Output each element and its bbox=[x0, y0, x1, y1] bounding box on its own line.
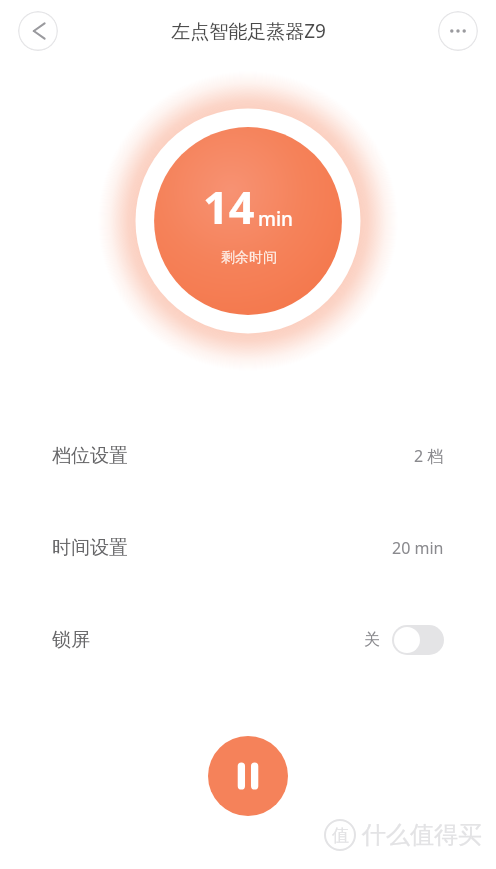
staticText: 14 bbox=[203, 176, 255, 237]
button[interactable]: 锁屏 bbox=[28, 607, 468, 673]
staticText: 时间设置 bbox=[52, 536, 128, 560]
button[interactable]: Pause bbox=[208, 736, 288, 816]
staticText: 剩余时间 bbox=[221, 249, 277, 267]
staticText: 值 bbox=[332, 825, 349, 846]
staticText: min bbox=[258, 206, 294, 232]
staticText: 20 min bbox=[392, 537, 444, 559]
staticText: 2 档 bbox=[414, 445, 444, 467]
button[interactable]: Lock screen toggle, off bbox=[392, 625, 444, 655]
button[interactable]: 时间设置 bbox=[28, 515, 468, 581]
staticText: 关 bbox=[364, 630, 380, 650]
button[interactable]: More options bbox=[438, 11, 478, 51]
staticText: 左点智能足蒸器Z9 bbox=[171, 18, 326, 44]
button[interactable]: Back bbox=[18, 11, 58, 51]
staticText: 什么值得买 bbox=[362, 820, 482, 850]
staticText: 档位设置 bbox=[52, 444, 128, 468]
button[interactable]: 档位设置 bbox=[28, 423, 468, 489]
staticText: 锁屏 bbox=[52, 628, 90, 652]
